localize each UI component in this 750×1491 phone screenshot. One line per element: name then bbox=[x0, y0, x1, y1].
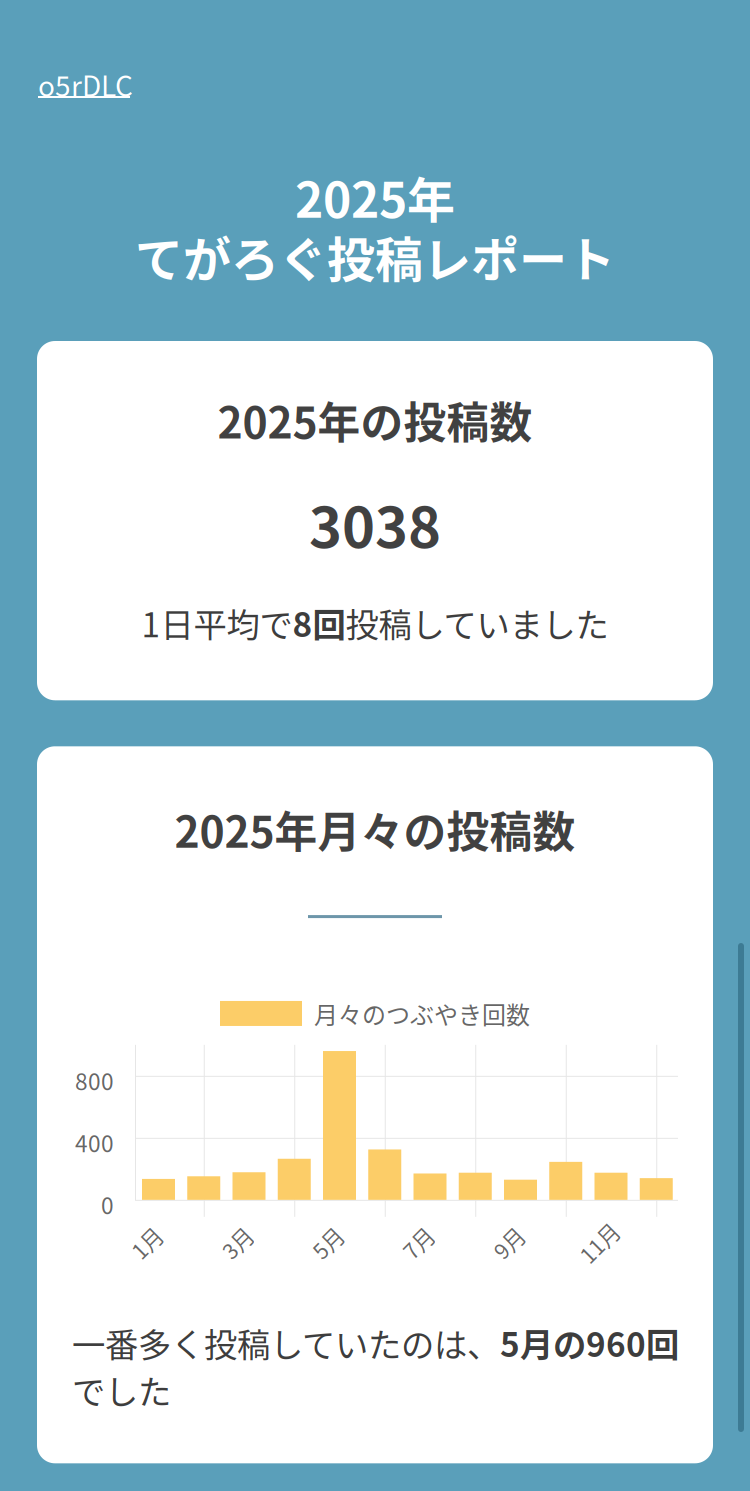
staticText: 5月 bbox=[311, 1227, 344, 1258]
staticText: 2025年月々の投稿数 bbox=[174, 798, 575, 860]
staticText: 0 bbox=[101, 1188, 114, 1221]
staticText: 2025年 bbox=[295, 162, 455, 231]
staticText: 1日平均で8回投稿していました bbox=[141, 599, 608, 646]
staticText: 9月 bbox=[492, 1227, 525, 1258]
staticText: 2025年の投稿数 bbox=[217, 389, 532, 451]
staticText: 1月 bbox=[130, 1227, 163, 1258]
staticText: 3月 bbox=[220, 1227, 253, 1258]
staticText: 月々のつぶやき回数 bbox=[314, 996, 530, 1031]
staticText: てがろぐ投稿レポート bbox=[135, 221, 615, 291]
staticText: 一番多く投稿していたのは、5月の960回でした bbox=[72, 1319, 679, 1413]
staticText: 3038 bbox=[309, 483, 441, 564]
staticText: 11月 bbox=[576, 1227, 621, 1258]
staticText: 800 bbox=[75, 1064, 114, 1097]
button[interactable]: o5rDLC bbox=[0, 0, 178, 104]
staticText: 400 bbox=[75, 1126, 114, 1159]
staticText: 7月 bbox=[401, 1227, 434, 1258]
staticText: o5rDLC bbox=[38, 64, 133, 104]
